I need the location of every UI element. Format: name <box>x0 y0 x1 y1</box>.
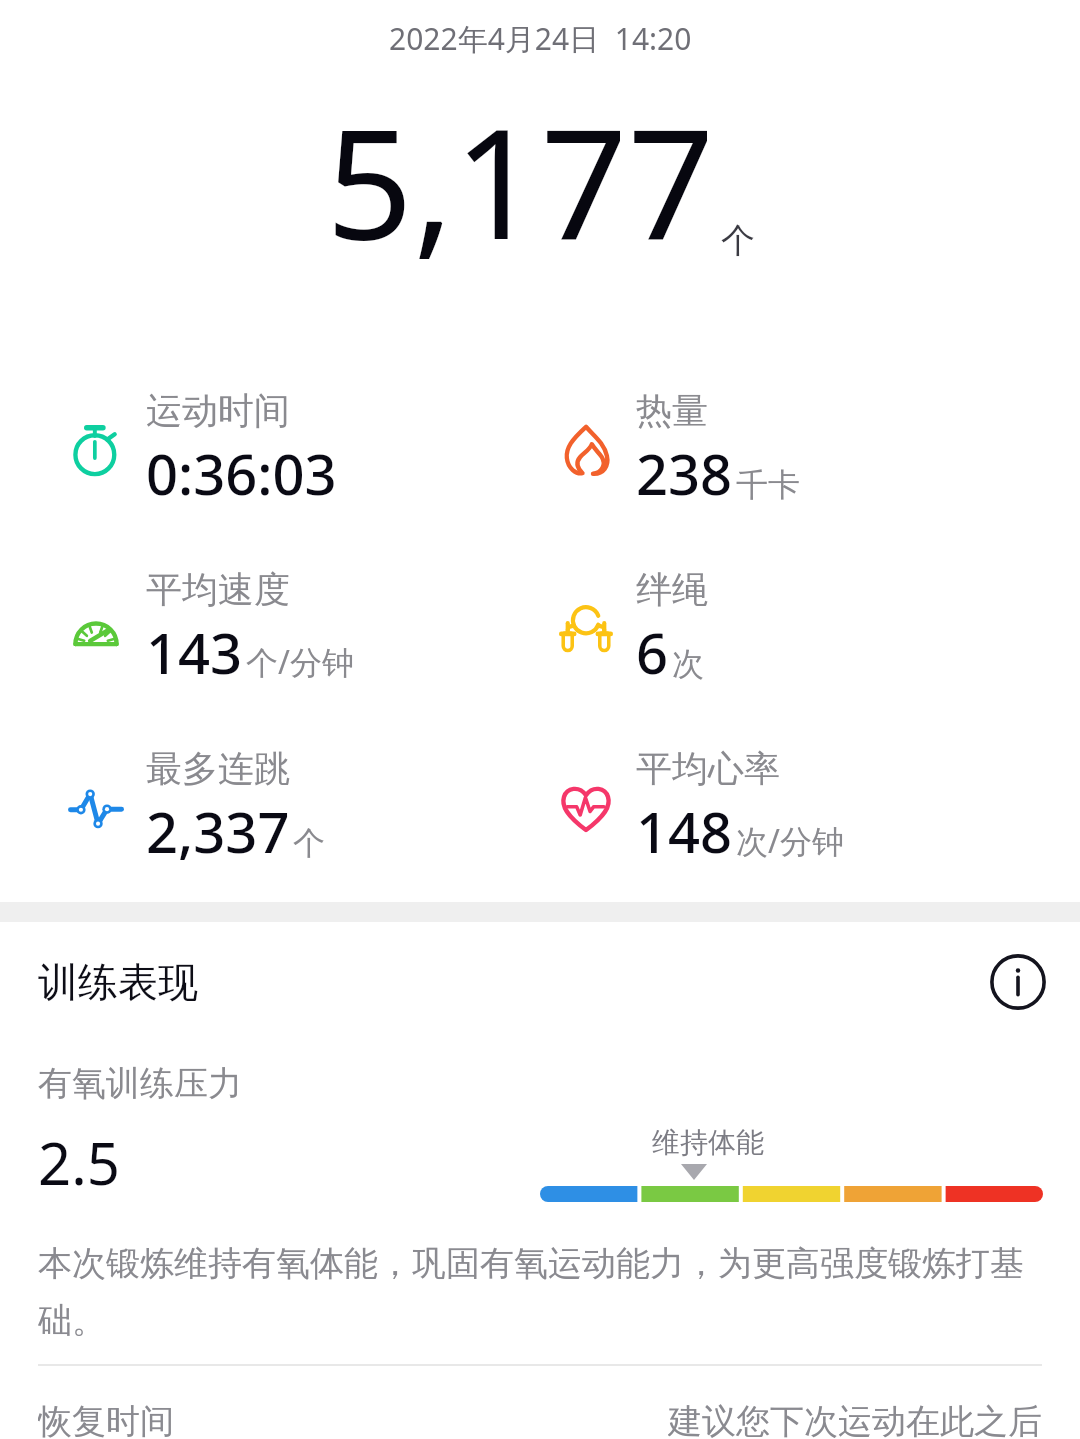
staticText: 2022年4月24日 14:20 <box>389 18 692 59</box>
staticText: 本次锻炼维持有氧体能，巩固有氧运动能力，为更高强度锻炼打基础。 <box>38 1242 1044 1342</box>
staticText: 训练表现 <box>38 957 198 1007</box>
button[interactable]: 平均速度 <box>60 567 354 690</box>
staticText: 238 <box>636 435 733 511</box>
staticText: 个 <box>293 823 325 863</box>
staticText: 运动时间 <box>146 388 290 433</box>
staticText: 绊绳 <box>636 567 708 612</box>
staticText: 建议您下次运动在此之后 <box>668 1400 1042 1439</box>
staticText: 个/分钟 <box>246 640 354 684</box>
staticText: 个 <box>721 219 755 262</box>
button[interactable]: 绊绳 <box>550 567 708 690</box>
button[interactable]: 平均心率 <box>550 746 844 869</box>
staticText: 0:36:03 <box>146 435 337 511</box>
staticText: 143 <box>146 614 243 690</box>
staticText: 最多连跳 <box>146 746 290 791</box>
staticText: 2,337 <box>146 793 290 869</box>
staticText: 次/分钟 <box>736 819 844 863</box>
button[interactable]: 运动时间 <box>60 388 337 511</box>
button[interactable]: 最多连跳 <box>60 746 325 869</box>
staticText: 5,177 <box>326 77 715 284</box>
staticText: 恢复时间 <box>38 1400 174 1439</box>
button[interactable]: 热量 <box>550 388 800 511</box>
staticText: 有氧训练压力 <box>38 1062 242 1105</box>
staticText: 平均速度 <box>146 567 290 612</box>
staticText: 平均心率 <box>636 746 780 791</box>
staticText: 148 <box>636 793 733 869</box>
staticText: 2.5 <box>38 1123 120 1202</box>
button[interactable]: 说明 <box>986 950 1050 1014</box>
staticText: 6 <box>636 614 669 690</box>
staticText: 次 <box>672 644 704 684</box>
staticText: 热量 <box>636 388 708 433</box>
staticText: 千卡 <box>736 465 800 505</box>
staticText: 维持体能 <box>652 1125 764 1160</box>
